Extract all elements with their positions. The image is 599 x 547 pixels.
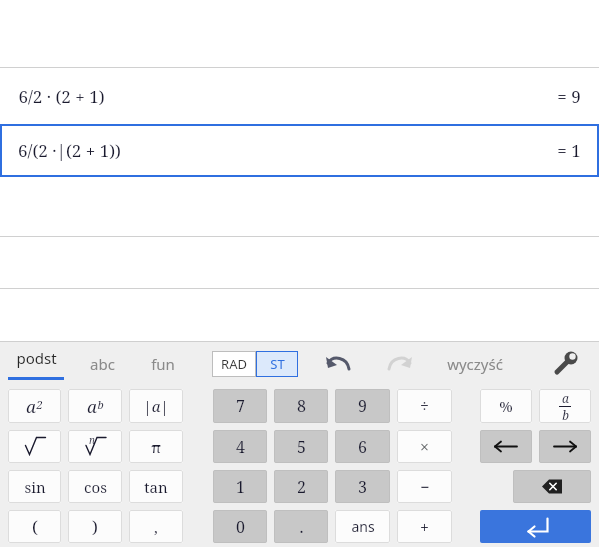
staticText: 3 bbox=[358, 476, 367, 498]
staticText: ST bbox=[270, 355, 285, 373]
staticText: RAD bbox=[221, 355, 247, 373]
staticText: abc bbox=[90, 354, 115, 374]
staticText: podst bbox=[16, 348, 57, 368]
button[interactable]: π bbox=[129, 430, 183, 463]
staticText: 4 bbox=[236, 436, 245, 458]
button[interactable]: × bbox=[397, 430, 452, 463]
button[interactable]: 6/(2 ·|(2 + 1)) bbox=[0, 124, 599, 177]
staticText: sin bbox=[24, 477, 46, 497]
staticText: 2 bbox=[297, 476, 306, 498]
staticText: 6/(2 ·|(2 + 1)) bbox=[18, 139, 121, 162]
button[interactable]: 1 bbox=[213, 470, 267, 503]
button[interactable]: . bbox=[274, 510, 328, 543]
button[interactable]: cos bbox=[68, 470, 122, 503]
button[interactable]: ans bbox=[335, 510, 390, 543]
button[interactable]: a bbox=[539, 389, 591, 423]
staticText: , bbox=[154, 517, 158, 537]
staticText: 1 bbox=[236, 476, 245, 498]
button[interactable]: , bbox=[129, 510, 183, 543]
button[interactable]: ) bbox=[68, 510, 122, 543]
button[interactable]: 0 bbox=[213, 510, 267, 543]
staticText: . bbox=[299, 516, 304, 538]
button[interactable]: 5 bbox=[274, 430, 328, 463]
staticText: n bbox=[89, 433, 95, 447]
button[interactable]: wyczyść bbox=[434, 342, 516, 386]
button[interactable]: + bbox=[397, 510, 452, 543]
button[interactable]: ÷ bbox=[397, 389, 452, 423]
staticText: 6/2 · (2 + 1) bbox=[18, 85, 105, 108]
button[interactable]: abc bbox=[72, 342, 132, 386]
staticText: b bbox=[562, 407, 569, 423]
button[interactable]: sin bbox=[8, 470, 61, 503]
button[interactable]: Undo bbox=[318, 349, 358, 379]
staticText: 7 bbox=[236, 395, 245, 417]
staticText: ) bbox=[92, 515, 98, 538]
staticText: b bbox=[97, 397, 104, 412]
button[interactable]: 3 bbox=[335, 470, 390, 503]
button[interactable]: % bbox=[480, 389, 532, 423]
button[interactable]: 6/2 · (2 + 1) bbox=[0, 68, 599, 124]
button[interactable]: 9 bbox=[335, 389, 390, 423]
button[interactable]: a bbox=[68, 389, 122, 423]
staticText: ÷ bbox=[420, 395, 429, 417]
staticText: 2 bbox=[36, 397, 43, 412]
button[interactable]: Settings bbox=[547, 347, 581, 381]
staticText: |a| bbox=[143, 396, 169, 416]
staticText: tan bbox=[144, 477, 168, 497]
staticText: ans bbox=[351, 517, 375, 536]
staticText: 6 bbox=[358, 436, 367, 458]
staticText: a bbox=[87, 395, 97, 418]
button[interactable]: 7 bbox=[213, 389, 267, 423]
button[interactable]: tan bbox=[129, 470, 183, 503]
staticText: = 1 bbox=[557, 139, 581, 162]
button[interactable]: − bbox=[397, 470, 452, 503]
staticText: cos bbox=[84, 477, 107, 497]
staticText: + bbox=[420, 516, 429, 538]
button[interactable]: Move left bbox=[480, 430, 532, 463]
button[interactable]: a bbox=[8, 389, 61, 423]
button[interactable]: 4 bbox=[213, 430, 267, 463]
staticText: wyczyść bbox=[447, 354, 503, 374]
staticText: × bbox=[420, 436, 429, 458]
button[interactable]: 2 bbox=[274, 470, 328, 503]
button[interactable]: Move right bbox=[539, 430, 591, 463]
button[interactable]: Enter bbox=[480, 510, 591, 543]
button[interactable]: |a| bbox=[129, 389, 183, 423]
staticText: 8 bbox=[297, 395, 306, 417]
staticText: = 9 bbox=[557, 85, 581, 108]
button[interactable]: RAD bbox=[212, 351, 256, 377]
button[interactable]: Backspace bbox=[513, 470, 591, 503]
button[interactable]: Redo bbox=[380, 349, 420, 379]
button[interactable]: 8 bbox=[274, 389, 328, 423]
staticText: a bbox=[562, 390, 569, 406]
staticText: 0 bbox=[236, 516, 245, 538]
button[interactable]: ST bbox=[256, 351, 298, 377]
button[interactable]: podst bbox=[0, 342, 72, 386]
staticText: a bbox=[26, 395, 36, 418]
staticText: fun bbox=[151, 354, 175, 374]
staticText: % bbox=[499, 396, 513, 416]
button[interactable]: fun bbox=[132, 342, 194, 386]
button[interactable]: Square root bbox=[8, 430, 61, 463]
staticText: 9 bbox=[358, 395, 367, 417]
staticText: π bbox=[151, 437, 161, 457]
button[interactable]: ( bbox=[8, 510, 61, 543]
button[interactable]: nth root bbox=[68, 430, 122, 463]
staticText: − bbox=[420, 476, 430, 498]
button[interactable]: 6 bbox=[335, 430, 390, 463]
staticText: 5 bbox=[297, 436, 306, 458]
staticText: ( bbox=[32, 515, 38, 538]
